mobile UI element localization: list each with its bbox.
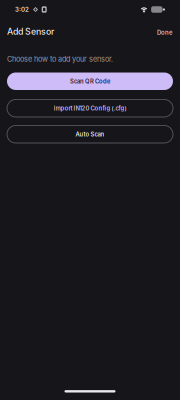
staticText: Scan QR Code	[70, 78, 110, 85]
staticText: Import IN120 Config (.cfg)	[53, 105, 126, 112]
button[interactable]: Done	[157, 29, 173, 36]
staticText: 3:02	[15, 6, 29, 13]
staticText: Auto Scan	[75, 131, 104, 138]
button[interactable]: Import IN120 Config (.cfg)	[7, 99, 173, 117]
staticText: Choose how to add your sensor.	[7, 55, 113, 63]
button[interactable]: Auto Scan	[7, 125, 173, 143]
staticText: Done	[157, 29, 173, 36]
staticText: Add Sensor	[7, 26, 54, 37]
button[interactable]: Scan QR Code	[7, 72, 173, 90]
